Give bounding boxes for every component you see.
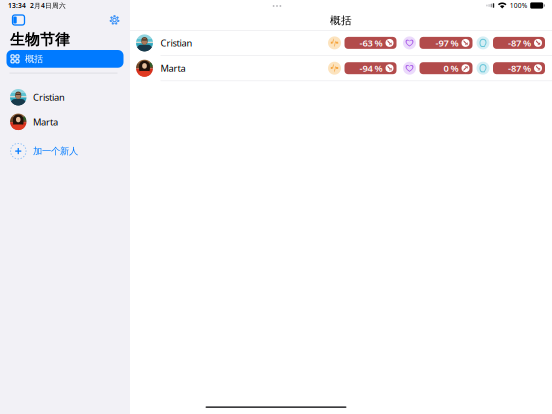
staticText: 概括 [330,14,352,27]
staticText: 100% [510,1,528,10]
staticText: -87 % [508,37,531,49]
staticText: -94 % [359,62,382,74]
staticText: 概括 [25,53,43,65]
button[interactable]: Toggle Sidebar [10,13,26,27]
staticText: 2月4日周六 [30,1,66,10]
staticText: 13:34 [8,1,26,10]
button[interactable]: 概括 [6,50,123,68]
staticText: Cristian [160,37,192,49]
button[interactable]: 加一个新人 [0,142,130,160]
staticText: Marta [33,116,58,128]
staticText: Cristian [33,91,65,103]
staticText: -87 % [508,62,531,74]
button[interactable]: Cristian [130,30,552,55]
staticText: 生物节律 [10,30,70,48]
button[interactable]: More [267,2,287,10]
button[interactable]: Cristian [0,85,130,109]
staticText: -63 % [359,37,382,49]
staticText: 0 % [443,62,458,74]
staticText: -97 % [435,37,458,49]
staticText: 加一个新人 [33,145,78,157]
button[interactable]: Marta [0,109,130,134]
button[interactable]: Marta [130,56,552,81]
staticText: Marta [160,62,185,74]
button[interactable]: Settings [107,13,121,27]
